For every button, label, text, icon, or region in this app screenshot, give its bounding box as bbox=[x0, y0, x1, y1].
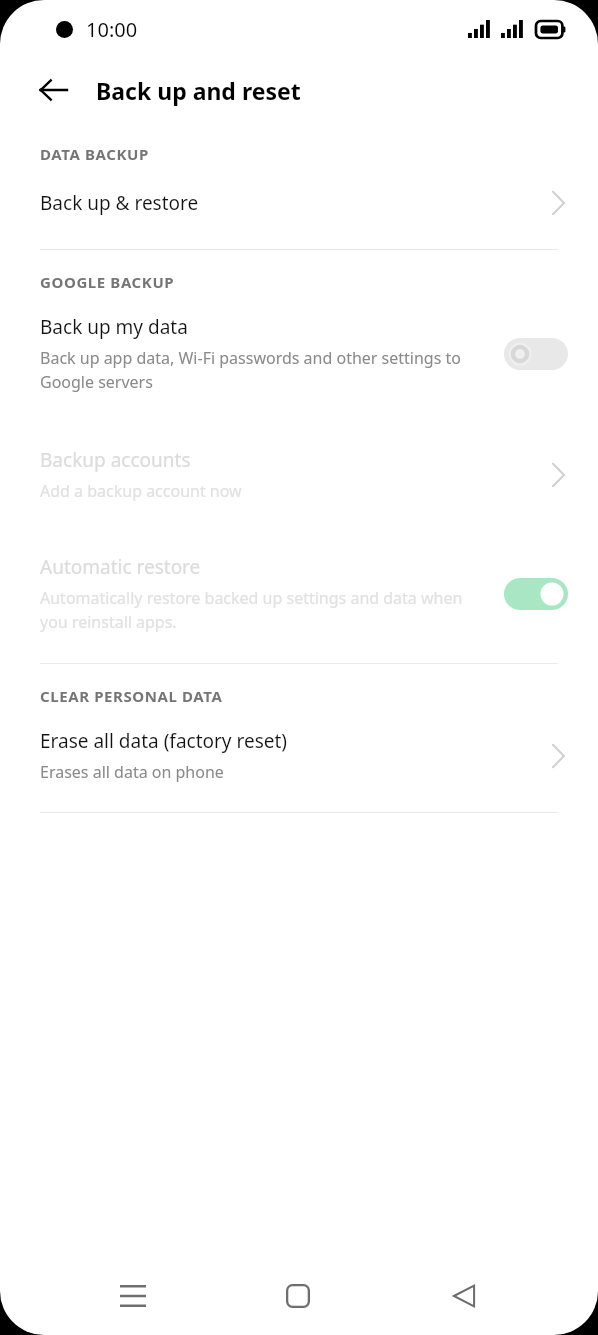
staticText: Erases all data on phone bbox=[40, 761, 224, 783]
staticText: Add a backup account now bbox=[40, 480, 242, 502]
button[interactable]: Erase all data (factory reset) bbox=[0, 706, 598, 787]
staticText: Erase all data (factory reset) bbox=[40, 728, 288, 754]
staticText: Back up app data, Wi-Fi passwords and ot… bbox=[40, 347, 490, 393]
button[interactable]: Automatic restore bbox=[0, 532, 598, 637]
staticText: 10:00 bbox=[86, 16, 138, 43]
button[interactable]: Back bbox=[432, 1264, 496, 1328]
button[interactable]: Back bbox=[22, 59, 84, 121]
staticText: DATA BACKUP bbox=[40, 144, 149, 164]
button[interactable]: Recent apps bbox=[101, 1264, 165, 1328]
button[interactable]: Home bbox=[266, 1264, 330, 1328]
staticText: CLEAR PERSONAL DATA bbox=[40, 686, 223, 706]
button[interactable]: Back up my data bbox=[0, 292, 598, 397]
staticText: GOOGLE BACKUP bbox=[40, 272, 175, 292]
button[interactable]: Toggle off bbox=[504, 335, 568, 373]
button[interactable]: Backup accounts bbox=[0, 425, 598, 506]
staticText: Backup accounts bbox=[40, 447, 191, 473]
button[interactable]: Back up & restore bbox=[0, 164, 598, 224]
staticText: Automatically restore backed up settings… bbox=[40, 587, 490, 633]
staticText: Back up my data bbox=[40, 314, 188, 340]
staticText: Automatic restore bbox=[40, 554, 201, 580]
button[interactable]: Toggle on bbox=[504, 575, 568, 613]
staticText: Back up and reset bbox=[96, 75, 301, 106]
staticText: Back up & restore bbox=[40, 190, 199, 216]
